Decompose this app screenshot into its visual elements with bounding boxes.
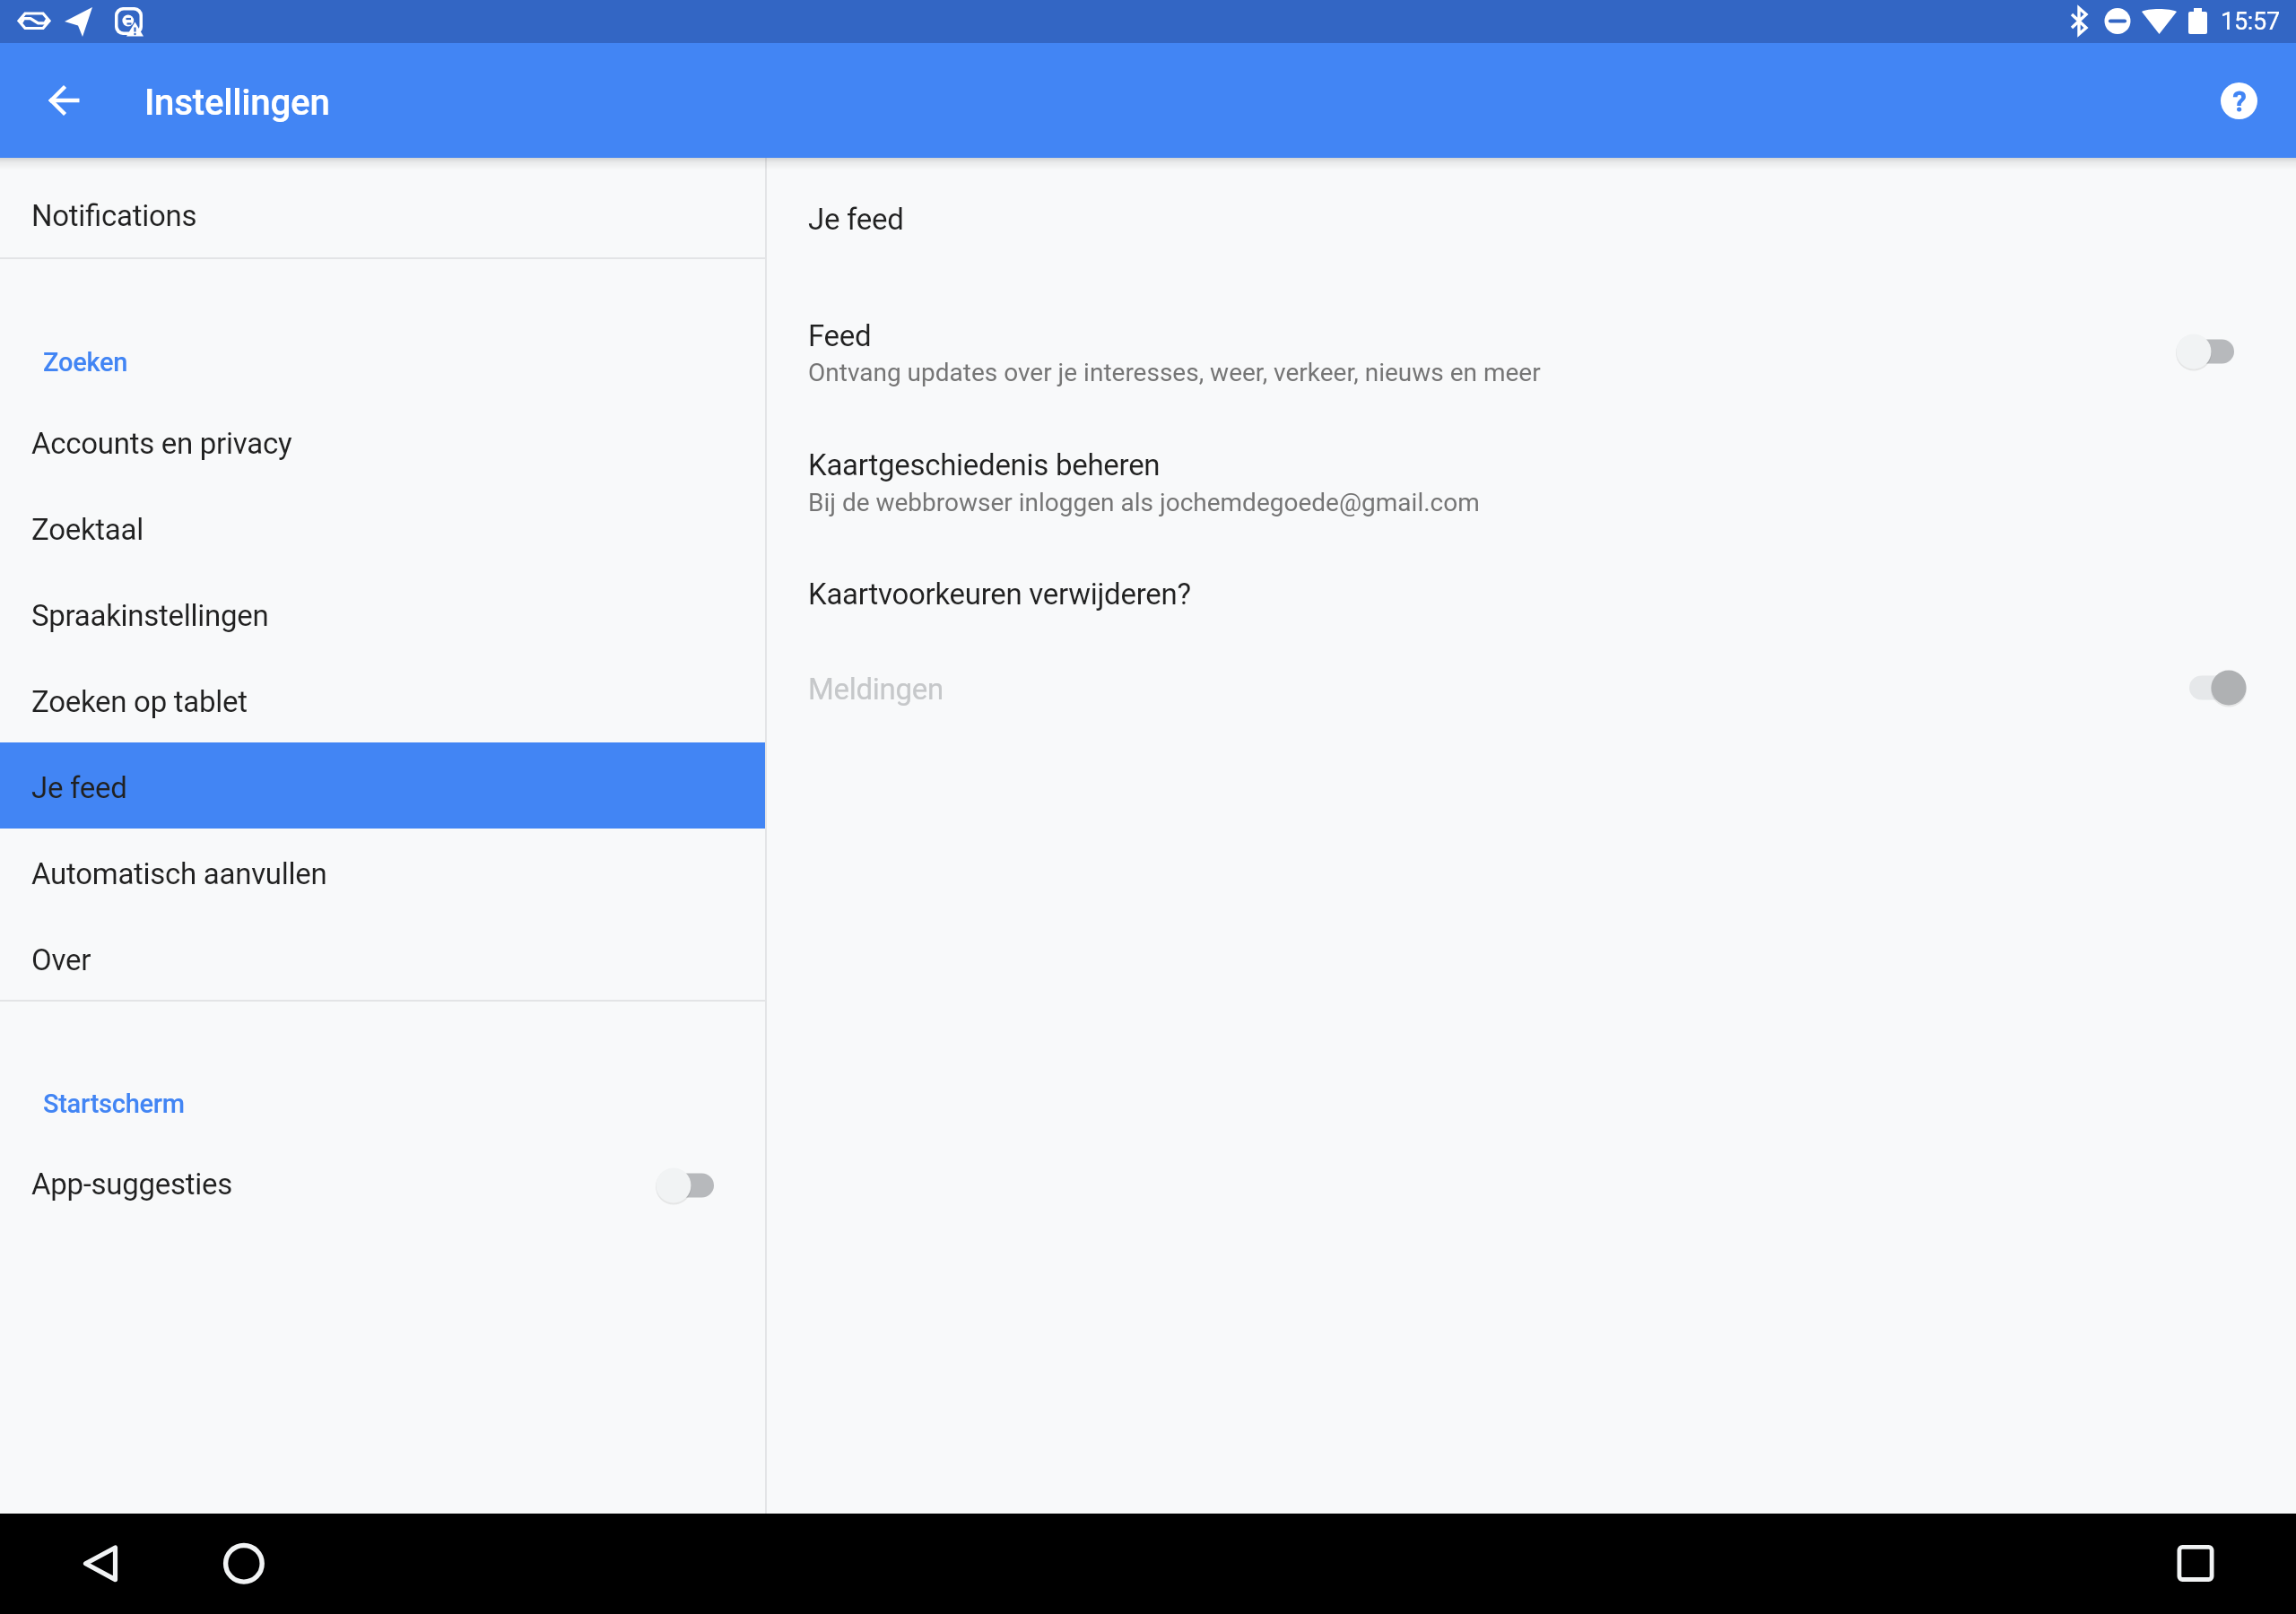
- staticText: Spraakinstellingen: [31, 598, 269, 633]
- staticText: Je feed: [808, 202, 904, 237]
- button[interactable]: [767, 563, 2296, 644]
- staticText: Kaartgeschiedenis beheren: [808, 447, 1161, 482]
- button[interactable]: [0, 1144, 765, 1230]
- staticText: ?: [2232, 85, 2247, 117]
- button[interactable]: [767, 436, 2296, 529]
- button[interactable]: [0, 915, 765, 1001]
- button[interactable]: Schakelaar uit: [2164, 333, 2250, 370]
- staticText: Zoeken: [43, 347, 128, 377]
- button[interactable]: Help: [2217, 79, 2260, 122]
- other: Schakelaar aan, uitgeschakeld: [2175, 669, 2261, 707]
- button[interactable]: [0, 398, 765, 484]
- button[interactable]: [0, 742, 765, 829]
- staticText: Accounts en privacy: [31, 426, 292, 461]
- staticText: Feed: [808, 318, 872, 353]
- staticText: 15:57: [2221, 7, 2280, 36]
- button[interactable]: [767, 305, 2296, 400]
- button[interactable]: Terug: [57, 1521, 143, 1607]
- button[interactable]: [0, 172, 765, 258]
- staticText: Over: [31, 942, 91, 977]
- staticText: Kaartvoorkeuren verwijderen?: [808, 577, 1191, 612]
- staticText: Automatisch aanvullen: [31, 856, 327, 891]
- button[interactable]: [0, 829, 765, 915]
- button[interactable]: [0, 570, 765, 656]
- staticText: Zoektaal: [31, 512, 143, 547]
- staticText: Je feed: [31, 770, 127, 805]
- staticText: Notifications: [31, 198, 197, 233]
- staticText: Instellingen: [144, 82, 330, 124]
- button[interactable]: Terug: [43, 79, 86, 122]
- button[interactable]: [0, 484, 765, 570]
- staticText: Zoeken op tablet: [31, 684, 248, 719]
- staticText: Bij de webbrowser inloggen als jochemdeg…: [808, 488, 1480, 517]
- staticText: App-suggesties: [31, 1167, 232, 1202]
- button[interactable]: Schakelaar uit: [644, 1167, 730, 1204]
- button[interactable]: [0, 656, 765, 742]
- button[interactable]: Recente apps: [2152, 1521, 2239, 1607]
- button[interactable]: Home: [201, 1521, 287, 1607]
- staticText: Startscherm: [43, 1089, 185, 1119]
- staticText: Ontvang updates over je interesses, weer…: [808, 358, 1541, 387]
- staticText: Meldingen: [808, 672, 944, 707]
